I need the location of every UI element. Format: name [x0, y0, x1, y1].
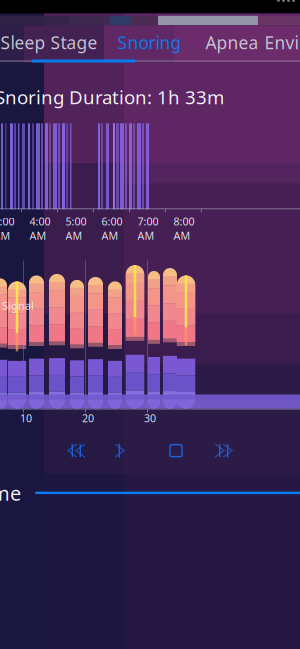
button[interactable]: Apnea: [201, 27, 263, 57]
staticText: 6:00 AM: [101, 214, 122, 243]
staticText: 8:00 AM: [173, 214, 194, 243]
staticText: 3:00 AM: [0, 214, 14, 243]
staticText: Sleep Stage: [0, 31, 97, 54]
button[interactable]: Fast forward: [202, 438, 254, 464]
staticText: 10: [20, 411, 32, 425]
staticText: 20: [82, 411, 94, 425]
staticText: 7:00 AM: [137, 214, 158, 243]
staticText: Snoring: [117, 31, 181, 54]
button[interactable]: Sleep Stage: [0, 27, 98, 57]
staticText: 5:00 AM: [65, 214, 86, 243]
staticText: Apnea: [205, 31, 258, 54]
button[interactable]: Rewind: [46, 438, 98, 464]
button[interactable]: Stop: [150, 438, 202, 464]
button[interactable]: Play: [98, 438, 150, 464]
staticText: 4:00 AM: [29, 214, 50, 243]
staticText: 30: [144, 411, 156, 425]
staticText: Total Snoring Duration: 1h 33m: [0, 84, 224, 109]
staticText: Sensor Signal: [0, 299, 34, 313]
button[interactable]: Envi: [263, 27, 300, 57]
button[interactable]: Snoring: [98, 27, 201, 57]
staticText: Volume: [0, 480, 21, 506]
staticText: Envi: [264, 31, 298, 54]
